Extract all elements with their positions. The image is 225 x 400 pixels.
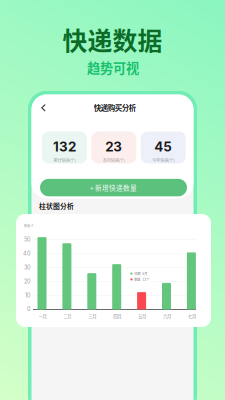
staticText: 50 — [24, 236, 31, 243]
staticText: 四月 — [113, 313, 121, 319]
staticText: 数量/个 — [24, 223, 34, 228]
staticText: 快递数据 — [62, 21, 162, 57]
staticText: 七月 — [188, 313, 196, 319]
staticText: 30 — [24, 264, 31, 271]
staticText: 40 — [23, 250, 31, 257]
staticText: 一月 — [38, 313, 46, 319]
button[interactable]: Back — [35, 100, 51, 116]
staticText: 累计快递(个) — [53, 157, 75, 163]
staticText: 20 — [24, 278, 31, 285]
staticText: 45 — [154, 138, 172, 155]
staticText: 二月 — [63, 313, 71, 319]
staticText: 132 — [53, 138, 76, 155]
staticText: 本月快递(个) — [103, 157, 125, 163]
staticText: 趋势可视 — [87, 58, 139, 77]
button[interactable]: + 新增快递数量 — [40, 179, 187, 196]
staticText: 五月 — [138, 313, 146, 319]
staticText: 三月 — [88, 313, 96, 319]
staticText: 10 — [25, 292, 31, 299]
staticText: 快递购买分析 — [94, 102, 136, 113]
staticText: + 新增快递数量 — [90, 183, 137, 192]
staticText: 数量 12个 — [134, 277, 149, 282]
staticText: 日期 5月 — [134, 271, 147, 276]
staticText: 0 — [27, 306, 31, 312]
staticText: 23 — [105, 138, 122, 155]
staticText: 柱状图分析 — [39, 201, 74, 211]
staticText: 六月 — [163, 313, 171, 319]
staticText: 今年快递(个) — [152, 157, 174, 163]
